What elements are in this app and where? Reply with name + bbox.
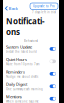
staticText: 7 days left in trial — [32, 10, 56, 14]
button[interactable]: Daily Digest — [3, 80, 59, 92]
staticText: Nudge me about drafts — [6, 75, 38, 78]
staticText: Reminders — [6, 69, 25, 74]
staticText: Back — [9, 6, 18, 11]
staticText: Daily Digest — [6, 82, 27, 87]
staticText: Notifications — [6, 16, 45, 37]
button[interactable]: Upgrade to Pro — [30, 3, 58, 9]
staticText: Mute from 10pm to 7am — [6, 62, 39, 66]
staticText: Quiet Hours — [6, 57, 27, 62]
staticText: Upgrade to Pro — [33, 4, 55, 8]
staticText: Behavioral — [24, 39, 38, 43]
staticText: Install the latest build — [6, 50, 37, 53]
button[interactable]: Quiet Hours — [3, 55, 59, 68]
button[interactable]: Reminders — [3, 68, 59, 80]
staticText: System Update — [6, 44, 32, 50]
button[interactable]: Mentions — [3, 92, 59, 103]
button[interactable]: Back — [3, 4, 20, 13]
button[interactable]: System Update — [3, 43, 59, 55]
staticText: When someone tags me — [6, 100, 39, 103]
staticText: Mentions — [6, 94, 22, 99]
staticText: One summary each morning — [6, 87, 43, 91]
